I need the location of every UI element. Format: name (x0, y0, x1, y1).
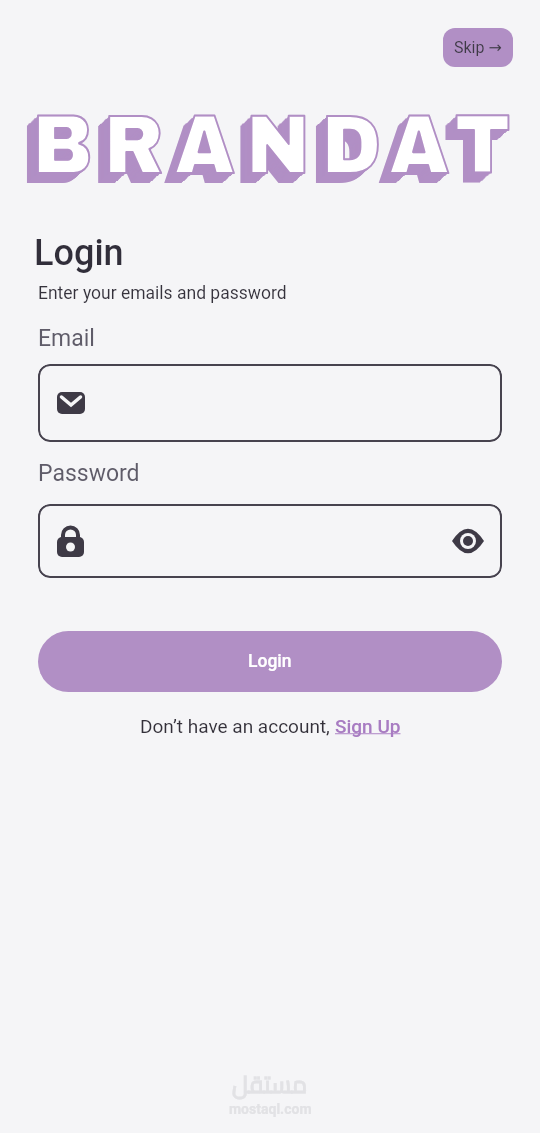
staticText: BRANDAT (21, 109, 511, 200)
button[interactable]: Sign Up (335, 715, 401, 737)
staticText: BRANDAT (23, 107, 512, 198)
staticText: Login (248, 651, 292, 672)
staticText: Login (34, 232, 124, 274)
staticText: Enter your emails and password (38, 283, 287, 304)
staticText: BRANDAT (24, 107, 513, 198)
staticText: BRANDAT (32, 99, 522, 190)
staticText: mostaql.com (229, 1101, 312, 1117)
staticText: مستقل (232, 1062, 308, 1107)
staticText: BRANDAT (32, 99, 522, 190)
staticText: BRANDAT (32, 99, 522, 190)
staticText: BRANDAT (31, 100, 521, 191)
staticText: Don’t have an account, (140, 715, 335, 737)
staticText: BRANDAT (28, 103, 517, 194)
staticText: Skip → (454, 38, 502, 57)
staticText: Email (38, 325, 95, 352)
button[interactable] (38, 364, 502, 442)
staticText: BRANDAT (29, 102, 519, 193)
button[interactable] (38, 504, 502, 578)
button[interactable]: Login (38, 631, 502, 692)
staticText: BRANDAT (27, 104, 516, 195)
button[interactable]: Skip → (443, 28, 513, 67)
staticText: Password (38, 460, 140, 487)
staticText: BRANDAT (26, 105, 515, 196)
staticText: BRANDAT (29, 102, 518, 193)
staticText: BRANDAT (25, 106, 514, 197)
staticText: BRANDAT (22, 108, 512, 199)
staticText: BRANDAT (30, 101, 520, 192)
